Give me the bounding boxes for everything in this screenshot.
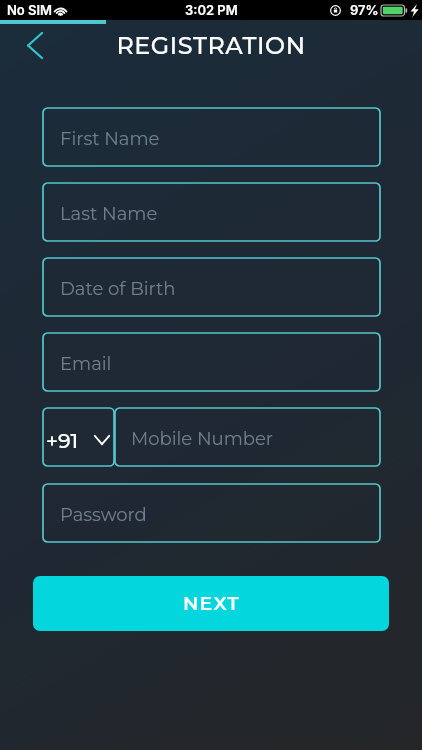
button[interactable]: NEXT bbox=[33, 576, 389, 631]
staticText: REGISTRATION bbox=[0, 31, 422, 60]
staticText: Email bbox=[60, 353, 112, 375]
button[interactable]: Email bbox=[43, 333, 380, 391]
button[interactable]: Mobile Number bbox=[115, 408, 380, 466]
button[interactable]: Date of Birth bbox=[43, 258, 380, 316]
staticText: Password bbox=[60, 504, 147, 526]
button[interactable]: Password bbox=[43, 484, 380, 542]
staticText: First Name bbox=[60, 128, 160, 150]
staticText: NEXT bbox=[183, 592, 240, 615]
staticText: Last Name bbox=[60, 203, 158, 225]
staticText: No SIM bbox=[7, 2, 53, 18]
button[interactable]: +91 bbox=[43, 408, 114, 466]
button[interactable]: Back bbox=[16, 27, 52, 63]
staticText: Mobile Number bbox=[131, 428, 274, 450]
staticText: Date of Birth bbox=[60, 278, 176, 300]
staticText: 3:02 PM bbox=[185, 2, 238, 18]
staticText: 97% bbox=[350, 2, 379, 18]
button[interactable]: First Name bbox=[43, 108, 380, 166]
button[interactable]: Last Name bbox=[43, 183, 380, 241]
staticText: +91 bbox=[46, 428, 79, 453]
